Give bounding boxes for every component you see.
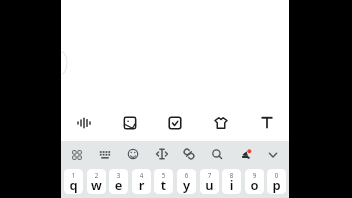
staticText: i bbox=[222, 176, 241, 194]
staticText: t bbox=[154, 176, 173, 194]
staticText: e bbox=[109, 176, 128, 194]
staticText: 4 bbox=[132, 171, 151, 179]
button[interactable]: Apps bbox=[65, 143, 89, 167]
button[interactable]: 4 bbox=[132, 169, 151, 194]
staticText: 5 bbox=[154, 171, 173, 179]
staticText: y bbox=[177, 176, 196, 194]
button[interactable]: Clipboard bbox=[177, 142, 201, 166]
button[interactable]: Emoji bbox=[121, 142, 145, 166]
staticText: u bbox=[200, 176, 219, 194]
button[interactable]: 2 bbox=[87, 169, 106, 194]
staticText: 0 bbox=[267, 171, 286, 179]
button[interactable]: Sticker bbox=[207, 109, 235, 137]
button[interactable]: 5 bbox=[154, 169, 173, 194]
staticText: p bbox=[267, 176, 286, 194]
staticText: 2 bbox=[87, 171, 106, 179]
button[interactable]: Collapse bbox=[261, 143, 285, 167]
staticText: 1 bbox=[64, 171, 83, 179]
button[interactable]: 6 bbox=[177, 169, 196, 194]
button[interactable]: 1 bbox=[64, 169, 83, 194]
button[interactable]: Checklist bbox=[161, 109, 189, 137]
staticText: q bbox=[64, 176, 83, 194]
staticText: 7 bbox=[200, 171, 219, 179]
button[interactable]: Text style bbox=[253, 109, 281, 137]
button[interactable]: Voice bbox=[234, 143, 258, 167]
button[interactable]: Keyboard bbox=[93, 143, 117, 167]
button[interactable]: 8 bbox=[222, 169, 241, 194]
staticText: 9 bbox=[245, 171, 264, 179]
staticText: 3 bbox=[109, 171, 128, 179]
staticText: r bbox=[132, 176, 151, 194]
button[interactable]: 3 bbox=[109, 169, 128, 194]
staticText: 6 bbox=[177, 171, 196, 179]
button[interactable]: 0 bbox=[267, 169, 286, 194]
button[interactable]: 7 bbox=[200, 169, 219, 194]
button[interactable]: Search bbox=[205, 142, 229, 166]
button[interactable]: 9 bbox=[245, 169, 264, 194]
button[interactable]: Audio bbox=[70, 109, 98, 137]
staticText: w bbox=[87, 176, 106, 194]
button[interactable]: Image bbox=[116, 109, 144, 137]
staticText: 8 bbox=[222, 171, 241, 179]
button[interactable]: Text editing bbox=[150, 142, 174, 166]
staticText: o bbox=[245, 176, 264, 194]
